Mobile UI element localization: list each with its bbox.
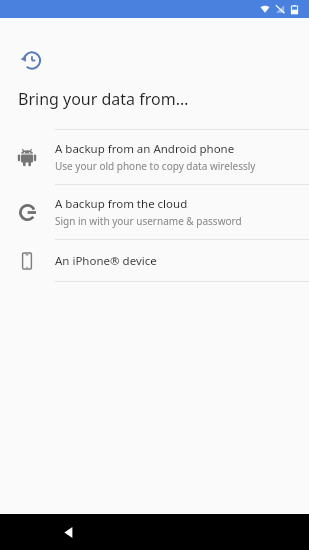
staticText: A backup from an Android phone bbox=[55, 141, 235, 157]
button[interactable]: Back bbox=[55, 519, 81, 545]
staticText: Sign in with your username & password bbox=[55, 214, 242, 228]
button[interactable]: iPhone device bbox=[0, 240, 309, 281]
staticText: A backup from the cloud bbox=[55, 196, 188, 212]
staticText: Use your old phone to copy data wireless… bbox=[55, 159, 256, 173]
staticText: Bring your data from… bbox=[18, 88, 189, 110]
other: iPhone device bbox=[16, 250, 38, 272]
staticText: An iPhone® device bbox=[55, 253, 157, 269]
other: Cloud backup bbox=[16, 201, 38, 223]
button[interactable]: Android phone backup bbox=[0, 130, 309, 184]
button[interactable]: Cloud backup bbox=[0, 185, 309, 239]
other: Android phone backup bbox=[16, 146, 38, 168]
